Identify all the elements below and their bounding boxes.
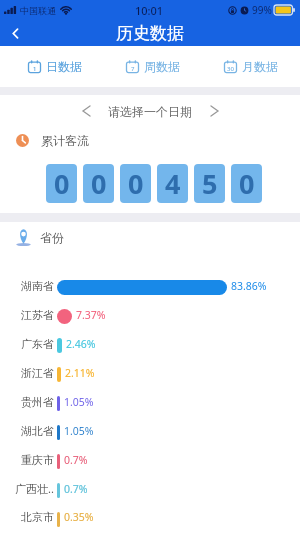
staticText: 2.46%: [66, 337, 96, 351]
button[interactable]: Next date: [202, 99, 226, 123]
staticText: 省份: [40, 230, 64, 245]
button[interactable]: 广西壮..: [0, 476, 300, 505]
staticText: 重庆市: [21, 453, 54, 467]
button[interactable]: 广东省: [0, 331, 300, 360]
staticText: 10:01: [135, 3, 164, 18]
staticText: 贵州省: [21, 395, 54, 409]
button[interactable]: 湖北省: [0, 418, 300, 447]
button[interactable]: 浙江省: [0, 360, 300, 389]
staticText: 2.11%: [65, 366, 95, 380]
staticText: 1.05%: [64, 424, 94, 438]
button[interactable]: Back: [0, 20, 30, 46]
staticText: 湖南省: [21, 279, 54, 293]
staticText: 1.05%: [64, 395, 94, 409]
button[interactable]: 湖南省: [0, 273, 300, 302]
staticText: 4: [165, 165, 181, 202]
staticText: 83.86%: [231, 279, 267, 293]
staticText: 请选择一个日期: [108, 104, 192, 119]
button[interactable]: 重庆市: [0, 447, 300, 476]
button[interactable]: 江苏省: [0, 302, 300, 331]
staticText: 月数据: [242, 59, 278, 74]
staticText: 0: [91, 165, 107, 202]
button[interactable]: 贵州省: [0, 389, 300, 418]
staticText: 北京市: [21, 510, 54, 524]
button[interactable]: 1: [5, 46, 104, 87]
staticText: 中国联通: [20, 5, 56, 16]
staticText: 湖北省: [21, 424, 54, 438]
staticText: 江苏省: [21, 308, 54, 322]
staticText: 30: [227, 65, 234, 73]
staticText: 浙江省: [21, 366, 54, 380]
staticText: 7.37%: [76, 308, 106, 322]
staticText: 0: [128, 165, 144, 202]
staticText: 0.35%: [64, 510, 94, 524]
button[interactable]: 7: [104, 46, 202, 87]
staticText: 7: [131, 65, 135, 73]
button[interactable]: Previous date: [74, 99, 98, 123]
button[interactable]: 30: [202, 46, 300, 87]
staticText: 0.7%: [64, 453, 88, 467]
staticText: 0.7%: [64, 482, 88, 496]
staticText: 0: [239, 165, 255, 202]
staticText: 广西壮..: [15, 481, 54, 496]
staticText: 日数据: [46, 59, 82, 74]
staticText: 99%: [252, 3, 272, 17]
staticText: 累计客流: [41, 133, 89, 148]
staticText: 5: [202, 165, 218, 202]
staticText: 广东省: [21, 337, 54, 351]
staticText: 历史数据: [116, 23, 184, 44]
staticText: 0: [54, 165, 70, 202]
staticText: 1: [33, 65, 37, 73]
staticText: 周数据: [144, 59, 180, 74]
button[interactable]: 北京市: [0, 505, 300, 533]
